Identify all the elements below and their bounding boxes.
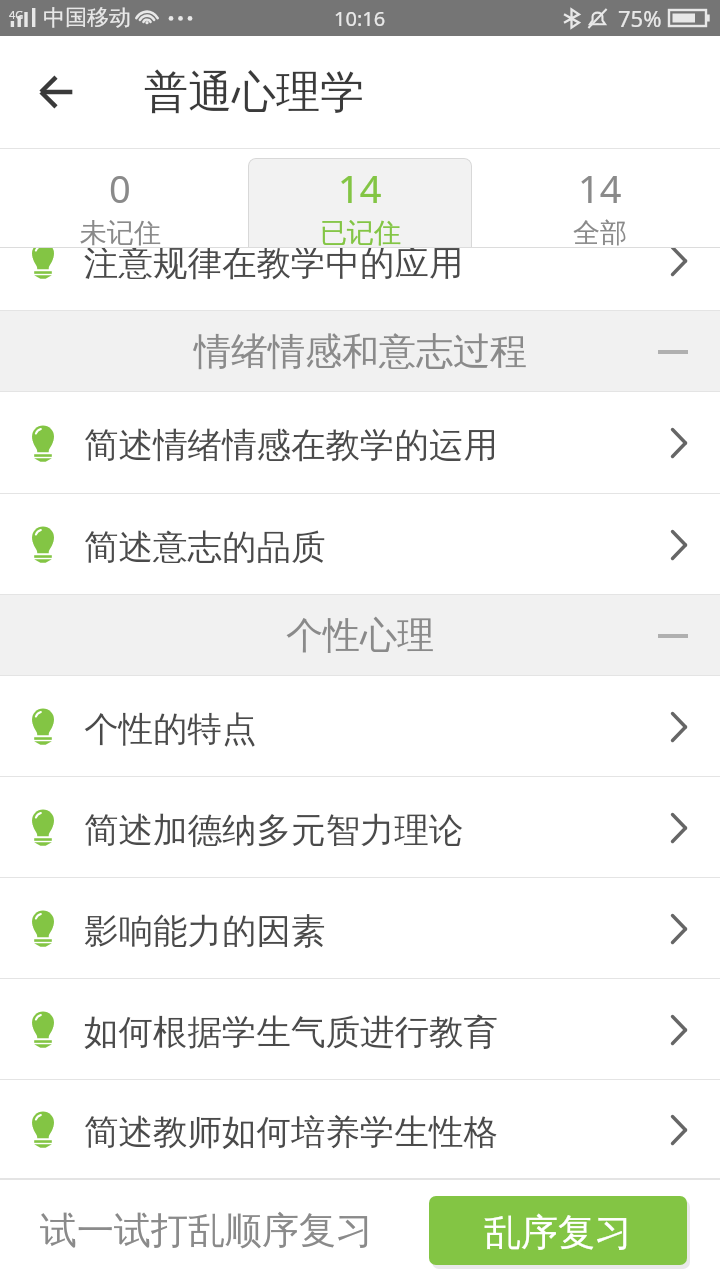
button[interactable]: 简述意志的品质 bbox=[0, 494, 720, 595]
button[interactable]: 简述加德纳多元智力理论 bbox=[0, 777, 720, 878]
staticText: 个性的特点 bbox=[84, 708, 671, 751]
button[interactable]: 影响能力的因素 bbox=[0, 878, 720, 979]
staticText: 全部 bbox=[573, 216, 627, 248]
button[interactable]: 注意规律在教学中的应用 bbox=[0, 248, 720, 311]
button[interactable]: 情绪情感和意志过程 bbox=[0, 311, 720, 392]
staticText: 75% bbox=[618, 3, 662, 33]
staticText: 已记住 bbox=[320, 216, 401, 248]
staticText: 影响能力的因素 bbox=[84, 910, 671, 953]
staticText: 10:16 bbox=[334, 5, 386, 32]
staticText: 乱序复习 bbox=[484, 1209, 632, 1256]
staticText: 注意规律在教学中的应用 bbox=[84, 248, 671, 285]
staticText: 4G bbox=[9, 7, 24, 22]
staticText: 情绪情感和意志过程 bbox=[194, 328, 527, 375]
staticText: 普通心理学 bbox=[144, 65, 364, 120]
staticText: 试一试打乱顺序复习 bbox=[40, 1207, 373, 1254]
button[interactable]: 乱序复习 bbox=[429, 1196, 687, 1265]
button[interactable]: 14 bbox=[248, 158, 472, 248]
button[interactable]: 14 bbox=[488, 158, 712, 248]
button[interactable]: 个性心理 bbox=[0, 595, 720, 676]
button[interactable]: 简述教师如何培养学生性格 bbox=[0, 1080, 720, 1179]
staticText: 未记住 bbox=[80, 216, 161, 248]
staticText: 简述教师如何培养学生性格 bbox=[84, 1111, 671, 1154]
button[interactable]: 0 bbox=[8, 158, 232, 248]
button[interactable]: Back bbox=[0, 36, 112, 148]
button[interactable]: 个性的特点 bbox=[0, 676, 720, 777]
staticText: 简述加德纳多元智力理论 bbox=[84, 809, 671, 852]
button[interactable]: 简述情绪情感在教学的运用 bbox=[0, 392, 720, 494]
button[interactable]: 如何根据学生气质进行教育 bbox=[0, 979, 720, 1080]
staticText: 14 bbox=[338, 162, 382, 214]
staticText: 0 bbox=[109, 162, 131, 214]
staticText: 简述情绪情感在教学的运用 bbox=[84, 424, 671, 467]
staticText: 简述意志的品质 bbox=[84, 526, 671, 569]
staticText: 中国移动 bbox=[43, 4, 131, 32]
staticText: 如何根据学生气质进行教育 bbox=[84, 1011, 671, 1054]
staticText: 个性心理 bbox=[286, 612, 434, 659]
staticText: 14 bbox=[578, 162, 622, 214]
